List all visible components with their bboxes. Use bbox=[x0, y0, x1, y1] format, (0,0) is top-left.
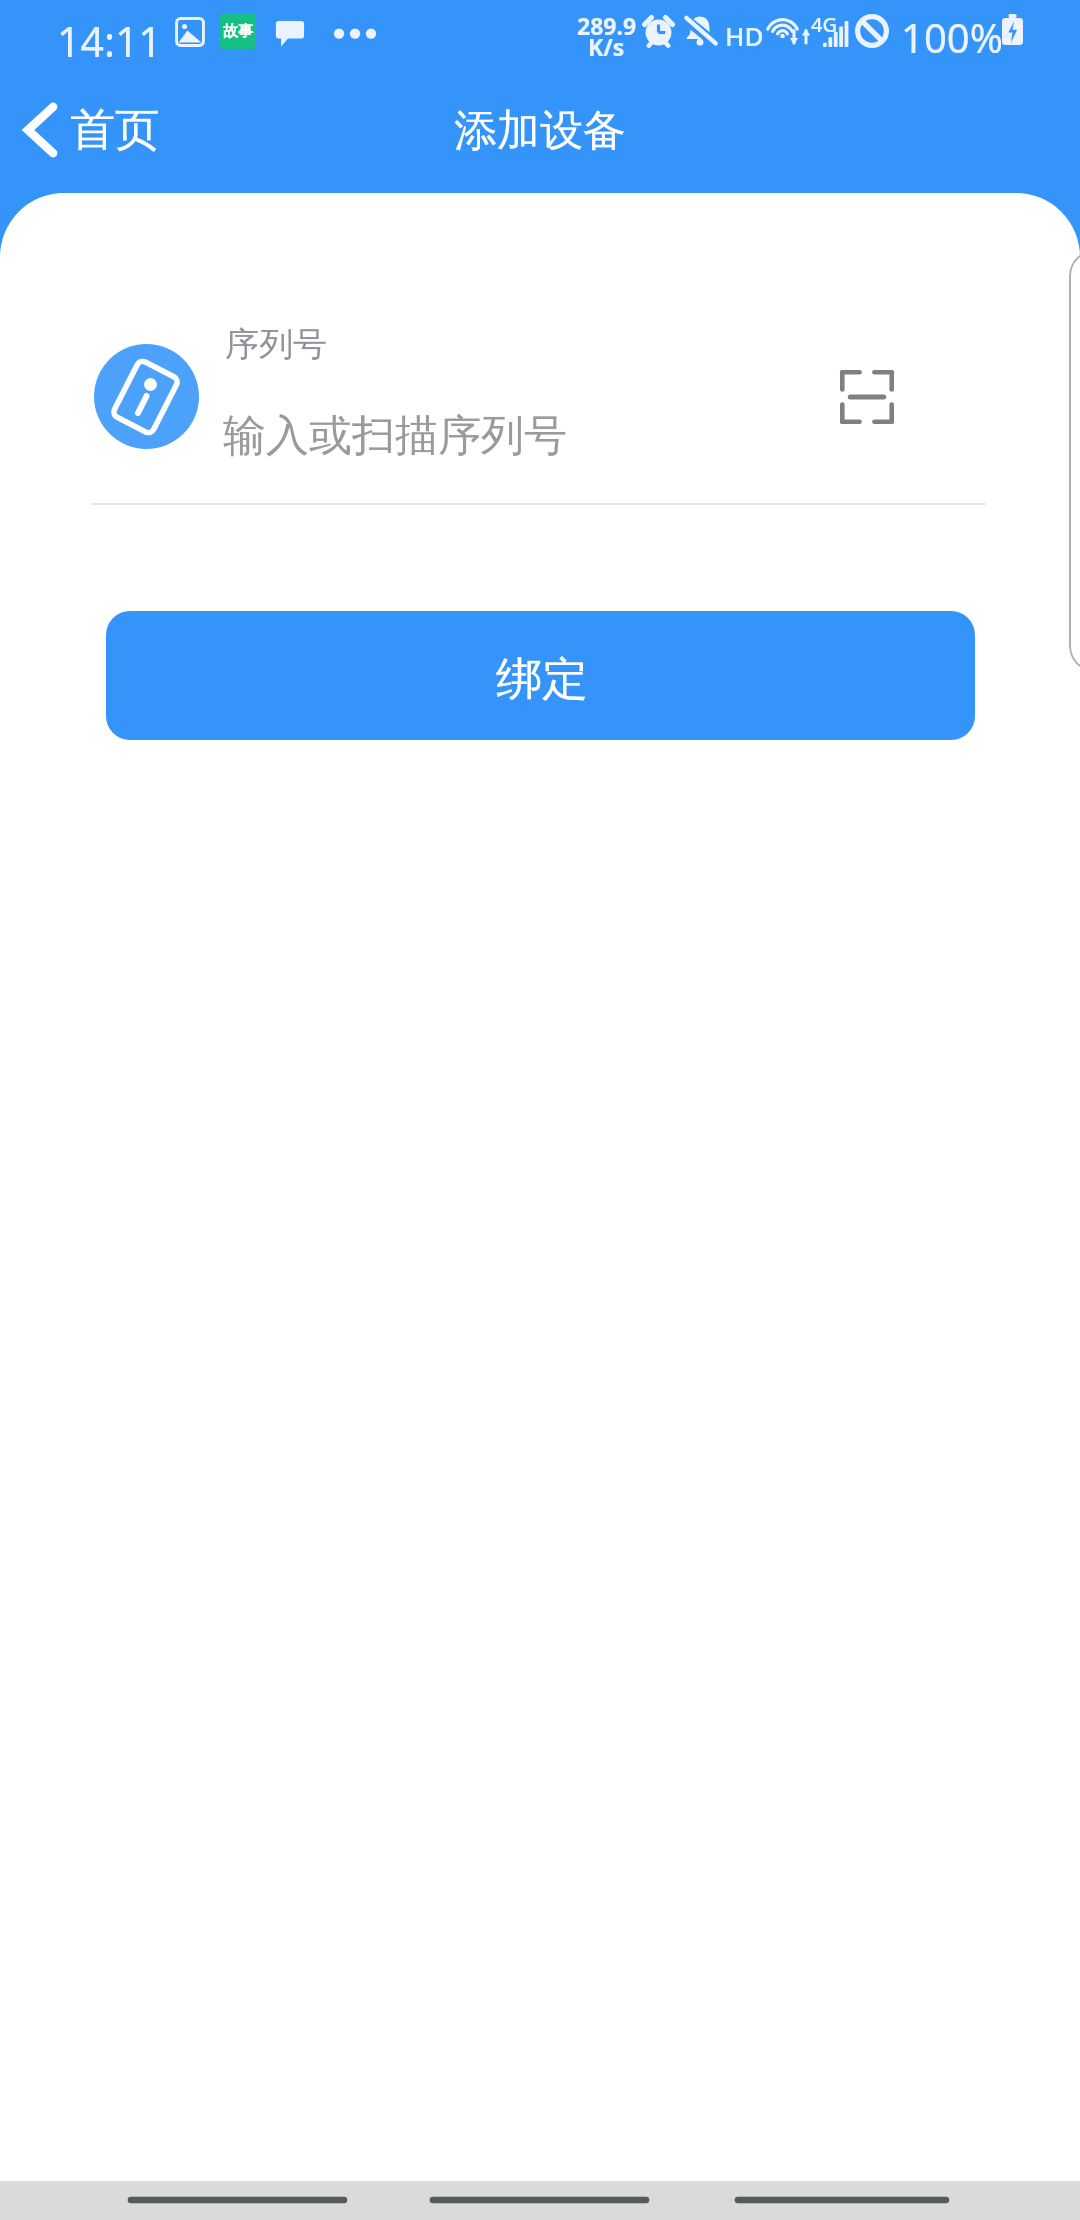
staticText: 输入或扫描序列号 bbox=[223, 409, 567, 463]
staticText: 4G bbox=[811, 11, 837, 38]
staticText: 序列号 bbox=[225, 323, 327, 366]
staticText: K/s bbox=[588, 31, 625, 62]
button[interactable]: Scan serial number bbox=[812, 342, 922, 452]
button[interactable]: 绑定 bbox=[106, 611, 975, 740]
button[interactable]: 首页 bbox=[0, 95, 180, 168]
staticText: 289.9 bbox=[577, 10, 637, 41]
staticText: HD bbox=[725, 18, 764, 53]
staticText: 故事 bbox=[223, 22, 253, 41]
staticText: 绑定 bbox=[496, 651, 588, 709]
button[interactable]: 序列号 bbox=[210, 311, 810, 471]
staticText: 添加设备 bbox=[454, 104, 626, 158]
staticText: 100% bbox=[901, 10, 1003, 64]
staticText: 14:11 bbox=[57, 13, 162, 69]
staticText: 首页 bbox=[70, 102, 160, 159]
